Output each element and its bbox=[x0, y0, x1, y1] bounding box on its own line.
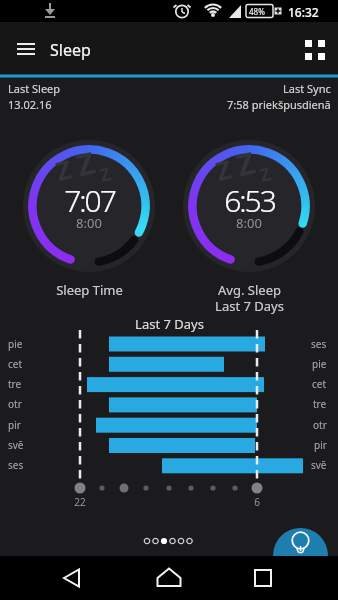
staticText: otr bbox=[313, 418, 327, 432]
staticText: Z bbox=[72, 141, 100, 185]
staticText: pie bbox=[8, 337, 23, 351]
staticText: Last Sleep bbox=[8, 81, 61, 96]
staticText: Sleep Time bbox=[56, 281, 123, 299]
staticText: Last 7 Days bbox=[135, 315, 204, 333]
staticText: pir bbox=[314, 438, 327, 452]
staticText: svē bbox=[8, 438, 24, 452]
staticText: ses bbox=[311, 337, 327, 351]
staticText: 6:53 bbox=[224, 180, 275, 221]
staticText: 7:58 priekšpusdienā bbox=[227, 97, 331, 112]
staticText: Z bbox=[52, 151, 76, 188]
staticText: Sleep bbox=[50, 39, 91, 61]
staticText: pie bbox=[312, 357, 327, 371]
button[interactable] bbox=[147, 560, 191, 596]
staticText: Z bbox=[97, 161, 114, 188]
staticText: Z bbox=[257, 161, 274, 188]
staticText: svē bbox=[311, 458, 327, 472]
staticText: Z bbox=[232, 141, 260, 185]
staticText: otr bbox=[8, 397, 22, 411]
staticText: tre bbox=[8, 377, 22, 391]
button[interactable] bbox=[241, 560, 285, 596]
staticText: 7:07 bbox=[64, 180, 115, 221]
button[interactable] bbox=[50, 560, 94, 596]
staticText: cet bbox=[8, 357, 23, 371]
staticText: 22 bbox=[74, 495, 86, 509]
staticText: 13.02.16 bbox=[8, 97, 52, 112]
staticText: 8:00 bbox=[236, 214, 262, 232]
staticText: 16:32 bbox=[288, 4, 319, 20]
button[interactable] bbox=[296, 33, 332, 69]
staticText: Last 7 Days bbox=[215, 297, 284, 315]
staticText: ses bbox=[8, 458, 24, 472]
staticText: tre bbox=[313, 397, 327, 411]
staticText: 48% bbox=[249, 6, 265, 17]
staticText: Z bbox=[212, 151, 236, 188]
button[interactable] bbox=[8, 32, 44, 68]
staticText: 8:00 bbox=[76, 214, 102, 232]
staticText: Avg. Sleep bbox=[218, 281, 281, 299]
button[interactable] bbox=[273, 528, 328, 583]
staticText: cet bbox=[312, 377, 327, 391]
staticText: 6 bbox=[254, 495, 260, 509]
staticText: pir bbox=[8, 418, 21, 432]
staticText: Last Sync bbox=[283, 81, 331, 96]
